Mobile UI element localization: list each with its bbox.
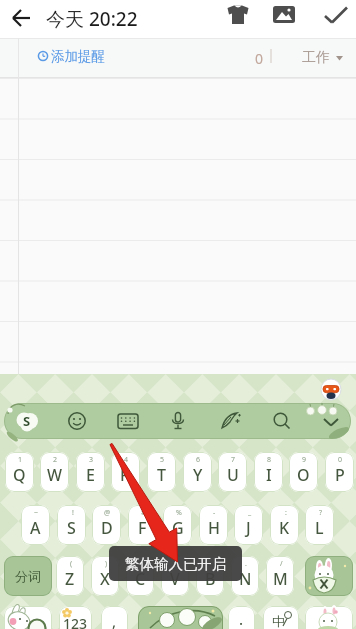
staticText: . bbox=[245, 559, 247, 569]
staticText: N bbox=[239, 568, 252, 590]
staticText: _ bbox=[248, 508, 252, 518]
staticText: % bbox=[176, 508, 182, 518]
button[interactable]: 3 bbox=[76, 452, 105, 492]
button[interactable] bbox=[4, 606, 52, 629]
button[interactable]: 6 bbox=[183, 452, 212, 492]
staticText: ( bbox=[70, 559, 73, 569]
staticText: J bbox=[246, 517, 251, 539]
button[interactable]: 0 bbox=[325, 452, 354, 492]
button[interactable]: 工作 bbox=[292, 42, 348, 74]
button[interactable]: % bbox=[163, 505, 192, 545]
staticText: 4 bbox=[124, 455, 129, 465]
button[interactable] bbox=[228, 606, 255, 629]
staticText: S bbox=[67, 517, 76, 539]
button[interactable]: 7 bbox=[218, 452, 247, 492]
staticText: 7 bbox=[231, 455, 236, 465]
button[interactable] bbox=[224, 0, 252, 32]
staticText: 今天 20:22 bbox=[46, 6, 138, 30]
staticText: : bbox=[285, 508, 287, 518]
staticText: 工作 bbox=[302, 49, 330, 67]
staticText: M bbox=[273, 568, 288, 590]
staticText: R bbox=[120, 464, 131, 486]
staticText: 8 bbox=[267, 455, 272, 465]
staticText: G bbox=[172, 517, 184, 539]
button[interactable] bbox=[215, 406, 245, 436]
staticText: 6 bbox=[196, 455, 201, 465]
button[interactable]: . bbox=[231, 556, 259, 596]
button[interactable]: 8 bbox=[254, 452, 283, 492]
staticText: - bbox=[213, 508, 216, 518]
button[interactable]: ! bbox=[57, 505, 86, 545]
staticText: O bbox=[297, 464, 310, 486]
button[interactable]: 1 bbox=[5, 452, 34, 492]
button[interactable] bbox=[62, 406, 92, 436]
button[interactable] bbox=[267, 406, 297, 436]
staticText: ? bbox=[139, 559, 143, 569]
button[interactable]: 5 bbox=[147, 452, 176, 492]
staticText: S bbox=[23, 412, 31, 430]
button[interactable] bbox=[101, 606, 128, 629]
button[interactable]: - bbox=[199, 505, 228, 545]
staticText: X bbox=[100, 568, 110, 590]
staticText: 123 bbox=[63, 614, 88, 629]
staticText: A bbox=[30, 517, 41, 539]
button[interactable]: ? bbox=[305, 505, 334, 545]
button[interactable] bbox=[320, 0, 352, 32]
staticText: / bbox=[280, 559, 283, 569]
staticText: D bbox=[101, 517, 113, 539]
staticText: @ bbox=[104, 508, 111, 518]
button[interactable]: 2 bbox=[40, 452, 69, 492]
button[interactable]: … bbox=[196, 556, 224, 596]
button[interactable] bbox=[113, 406, 143, 436]
staticText: ? bbox=[319, 508, 323, 518]
staticText: Q bbox=[13, 464, 26, 486]
button[interactable]: _ bbox=[234, 505, 263, 545]
staticText: I bbox=[266, 464, 272, 486]
staticText: U bbox=[227, 464, 239, 486]
button[interactable]: 添加提醒 bbox=[28, 42, 148, 74]
button[interactable] bbox=[4, 556, 52, 596]
button[interactable] bbox=[270, 0, 298, 32]
button[interactable] bbox=[163, 406, 193, 436]
staticText: 0 bbox=[255, 49, 264, 68]
button[interactable]: ( bbox=[56, 556, 84, 596]
button[interactable] bbox=[305, 606, 353, 629]
staticText: H bbox=[208, 517, 220, 539]
button[interactable] bbox=[0, 0, 42, 37]
staticText: T bbox=[157, 464, 166, 486]
staticText: 3 bbox=[89, 455, 94, 465]
button[interactable]: # bbox=[128, 505, 157, 545]
button[interactable]: ? bbox=[126, 556, 154, 596]
staticText: 添加提醒 bbox=[51, 48, 105, 65]
button[interactable]: ~ bbox=[21, 505, 50, 545]
staticText: K bbox=[279, 517, 290, 539]
staticText: 5 bbox=[160, 455, 165, 465]
button[interactable] bbox=[263, 606, 299, 629]
button[interactable]: / bbox=[266, 556, 294, 596]
button[interactable]: : bbox=[270, 505, 299, 545]
staticText: Z bbox=[65, 568, 75, 590]
staticText: . bbox=[239, 609, 244, 629]
staticText: ) bbox=[105, 559, 108, 569]
button[interactable]: ! bbox=[161, 556, 189, 596]
staticText: B bbox=[205, 568, 216, 590]
staticText: P bbox=[335, 464, 345, 486]
staticText: F bbox=[138, 517, 147, 539]
button[interactable]: S bbox=[13, 406, 43, 436]
button[interactable]: @ bbox=[92, 505, 121, 545]
staticText: Y bbox=[193, 464, 203, 486]
staticText: ~ bbox=[34, 508, 39, 518]
button[interactable] bbox=[138, 606, 223, 629]
staticText: ! bbox=[175, 559, 177, 569]
staticText: 1 bbox=[18, 455, 23, 465]
staticText: , bbox=[112, 611, 117, 629]
button[interactable] bbox=[316, 406, 348, 436]
button[interactable]: 9 bbox=[289, 452, 318, 492]
staticText: 分词 bbox=[15, 568, 41, 584]
button[interactable]: 4 bbox=[111, 452, 140, 492]
button[interactable]: ) bbox=[91, 556, 119, 596]
button[interactable] bbox=[59, 606, 92, 629]
staticText: 0 bbox=[338, 455, 343, 465]
staticText: W bbox=[47, 464, 63, 486]
button[interactable] bbox=[305, 556, 353, 596]
